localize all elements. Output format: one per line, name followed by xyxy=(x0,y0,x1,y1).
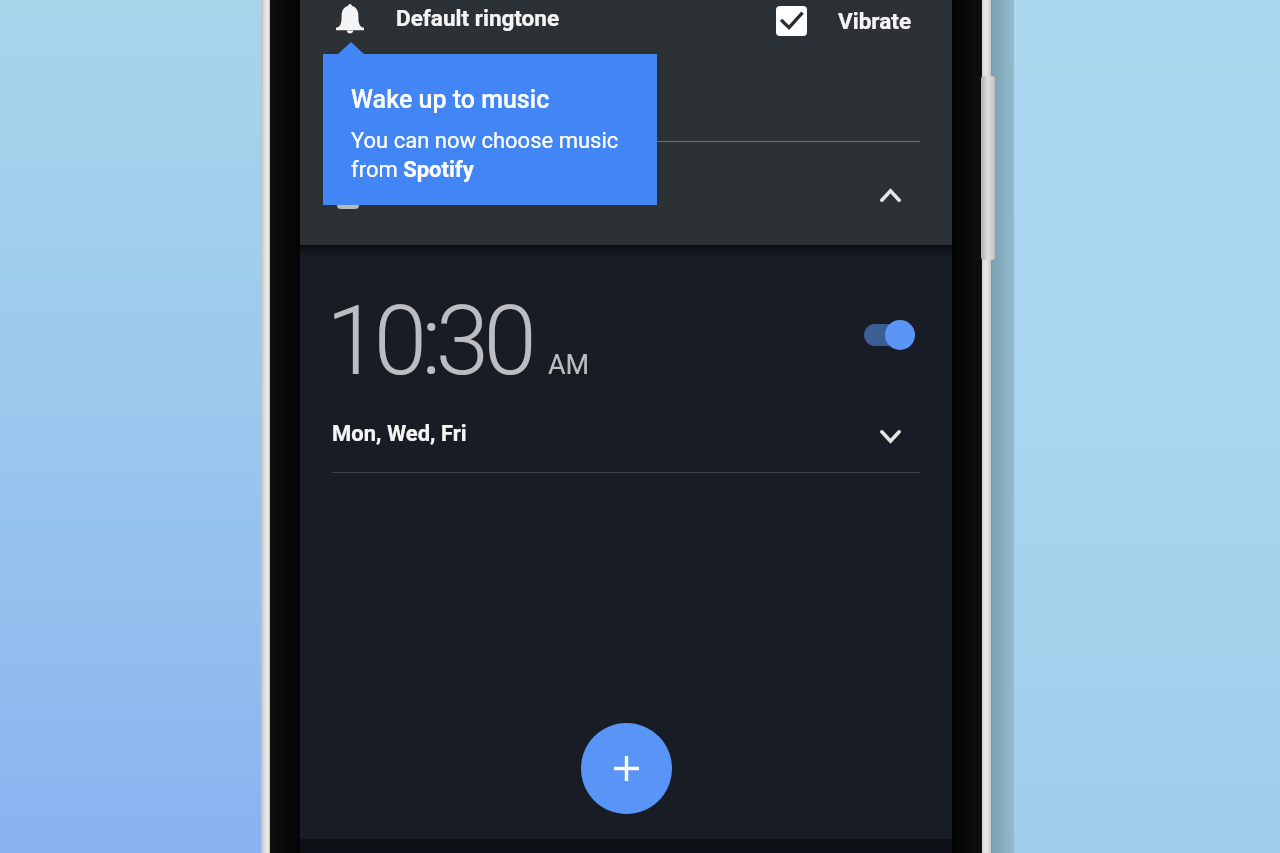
button[interactable]: Power button xyxy=(981,76,995,260)
button[interactable]: 10:30 xyxy=(326,285,587,398)
staticText: 10:30 xyxy=(326,285,532,398)
button[interactable]: Alarm enabled xyxy=(858,316,918,356)
staticText: Vibrate xyxy=(838,8,912,34)
button[interactable]: Default ringtone xyxy=(336,0,560,36)
button[interactable]: Wake up to music xyxy=(323,54,657,205)
button[interactable]: Collapse alarm xyxy=(868,173,912,217)
staticText: Default ringtone xyxy=(396,5,560,31)
staticText: You can now choose music from Spotify xyxy=(351,128,619,182)
button[interactable]: Mon, Wed, Fri xyxy=(332,421,467,447)
button[interactable]: Expand alarm xyxy=(868,414,912,458)
staticText: Wake up to music xyxy=(351,85,550,114)
staticText: AM xyxy=(548,349,590,381)
button[interactable]: Vibrate xyxy=(776,0,912,41)
button[interactable]: Add alarm xyxy=(581,723,672,814)
